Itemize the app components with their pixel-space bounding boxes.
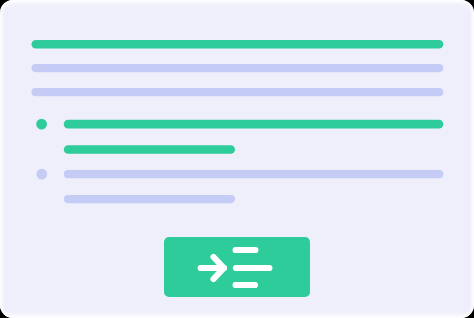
button[interactable]: Send to list xyxy=(164,237,310,297)
